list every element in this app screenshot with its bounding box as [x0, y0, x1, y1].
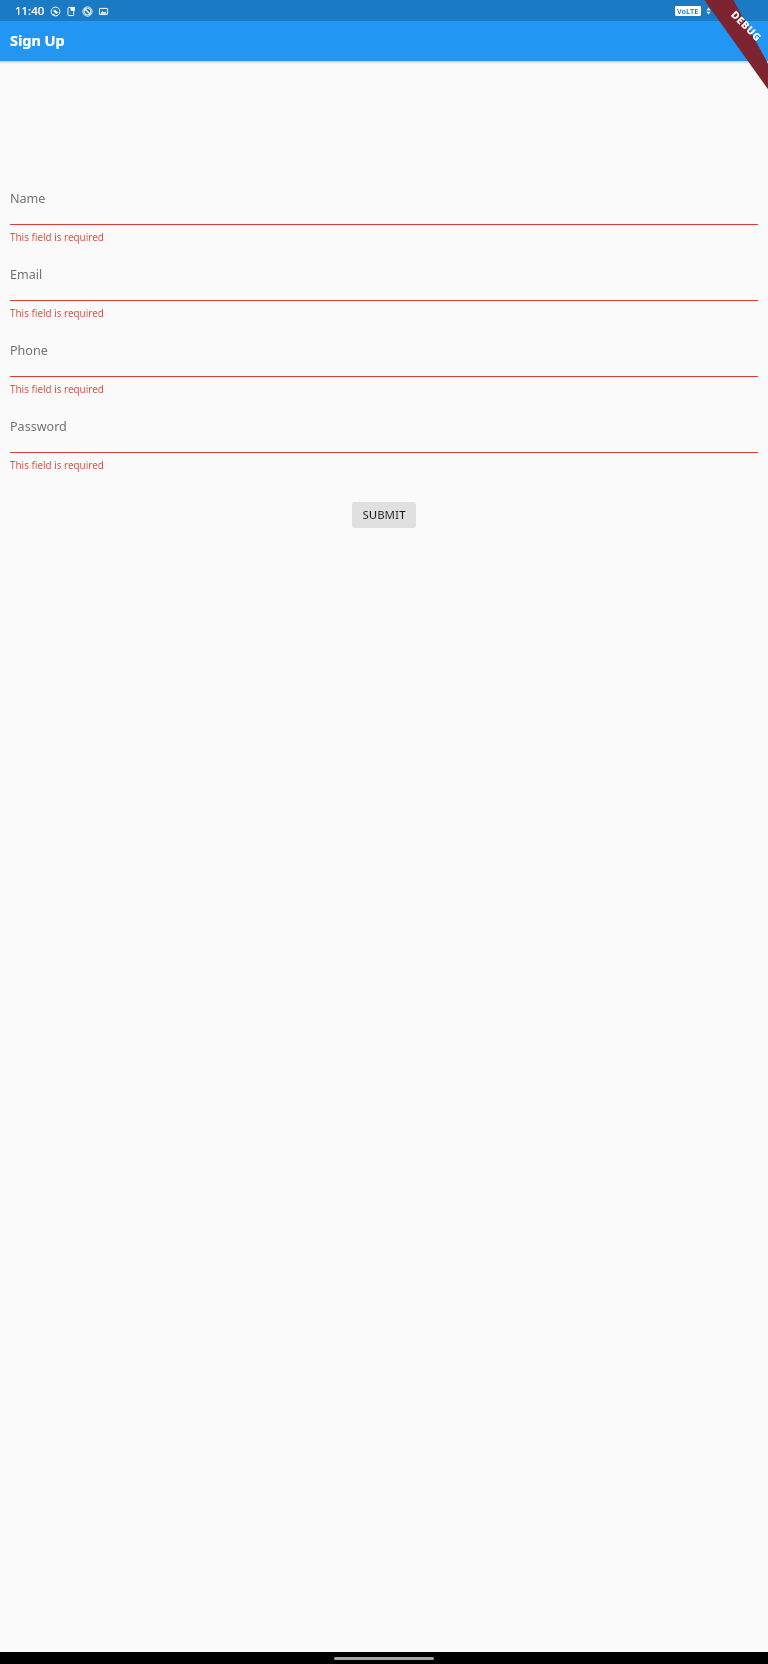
- staticText: DEBUG: [729, 7, 765, 44]
- staticText: SUBMIT: [362, 507, 406, 523]
- button[interactable]: Email: [10, 266, 758, 319]
- staticText: VoLTE: [677, 6, 699, 16]
- staticText: Email: [10, 266, 43, 283]
- staticText: This field is required: [10, 230, 104, 243]
- button[interactable]: Name: [10, 190, 758, 243]
- staticText: Phone: [10, 342, 48, 359]
- staticText: 11:40: [15, 3, 45, 19]
- staticText: This field is required: [10, 382, 104, 395]
- staticText: This field is required: [10, 458, 104, 471]
- staticText: Sign Up: [10, 31, 65, 51]
- staticText: This field is required: [10, 306, 104, 319]
- staticText: Password: [10, 418, 67, 435]
- button[interactable]: SUBMIT: [352, 502, 416, 528]
- button[interactable]: Phone: [10, 342, 758, 395]
- staticText: Name: [10, 190, 46, 207]
- button[interactable]: Password: [10, 418, 758, 471]
